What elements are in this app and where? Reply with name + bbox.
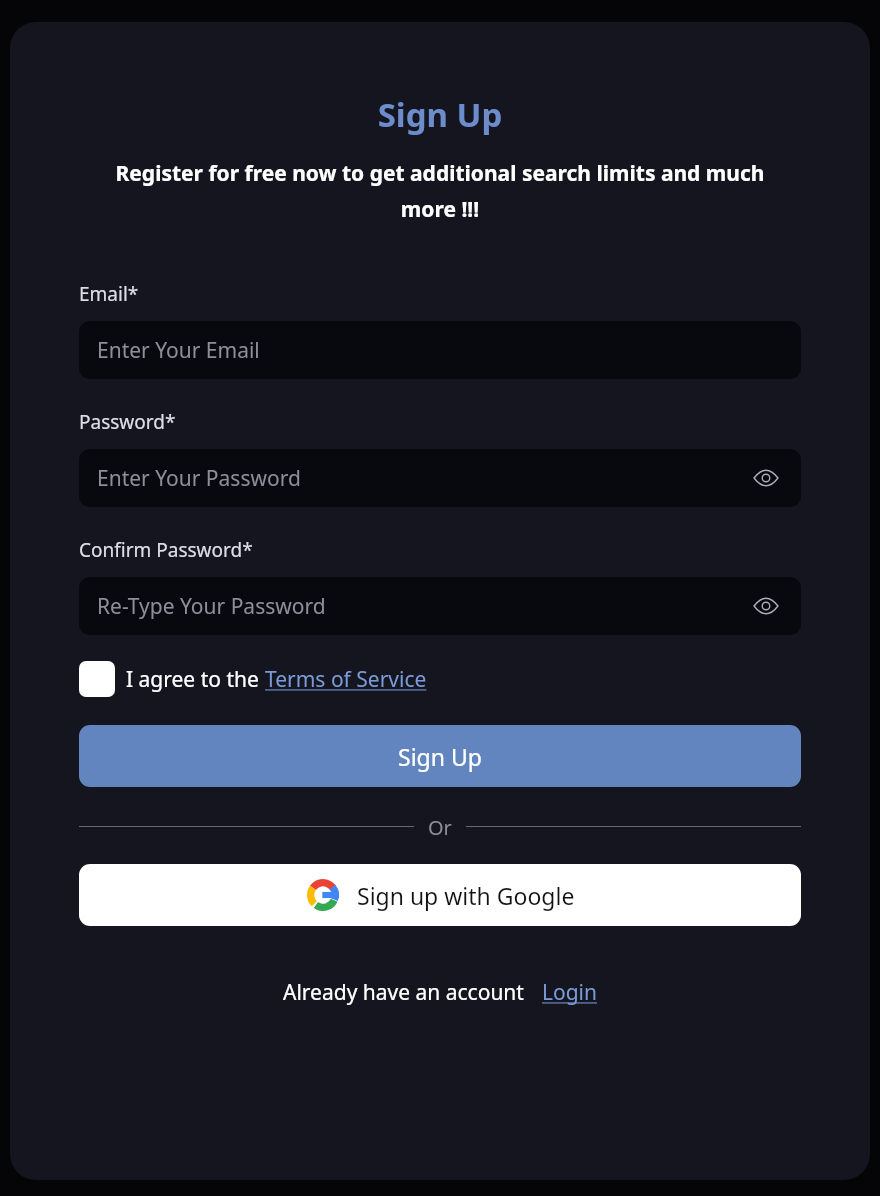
staticText: Sign Up [79, 92, 801, 137]
staticText: I agree to the [126, 665, 265, 694]
button[interactable]: Agree to Terms of Service [79, 661, 115, 697]
staticText: Enter Your Email [97, 336, 260, 365]
staticText: Re-Type Your Password [97, 592, 326, 621]
staticText: Confirm Password* [79, 537, 253, 563]
staticText: Enter Your Password [97, 464, 301, 493]
staticText: Or [428, 814, 452, 838]
staticText: Password* [79, 409, 176, 435]
button[interactable]: Enter Your Email [79, 321, 801, 379]
button[interactable]: Sign Up [79, 725, 801, 787]
button[interactable]: Enter Your Password [79, 449, 801, 507]
staticText: Sign up with Google [357, 880, 575, 911]
staticText: Email* [79, 281, 139, 307]
button[interactable]: Show password [749, 461, 783, 495]
staticText: Login [542, 978, 598, 1007]
button[interactable]: Sign up with Google [79, 864, 801, 926]
button[interactable]: Terms of Service [265, 665, 427, 694]
button[interactable]: Login [542, 978, 598, 1007]
staticText: Terms of Service [265, 665, 427, 694]
staticText: Already have an account [283, 978, 524, 1007]
button[interactable]: Re-Type Your Password [79, 577, 801, 635]
button[interactable]: Show password [749, 589, 783, 623]
staticText: Sign Up [398, 741, 482, 772]
staticText: Register for free now to get additional … [79, 159, 801, 223]
